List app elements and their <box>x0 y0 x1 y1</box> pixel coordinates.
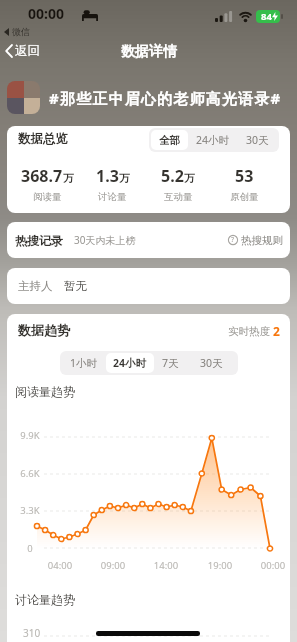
button[interactable]: 微信 <box>4 26 30 37</box>
staticText: 微信 <box>12 26 30 37</box>
button[interactable]: 主持人 <box>18 268 279 304</box>
staticText: 2 <box>273 323 280 339</box>
staticText: 暂无 <box>64 279 87 293</box>
staticText: 14:00 <box>151 559 181 572</box>
staticText: 24小时 <box>196 133 230 147</box>
staticText: 实时热度 <box>228 324 273 338</box>
staticText: 30天内未上榜 <box>74 233 136 247</box>
staticText: 5.2 <box>161 165 184 187</box>
button[interactable]: #那些正中眉心的老师高光语录# <box>7 81 282 114</box>
staticText: 19:00 <box>205 559 235 572</box>
button[interactable]: 热搜记录 <box>15 222 283 258</box>
button[interactable]: 返回 <box>5 43 40 59</box>
staticText: 30天 <box>200 356 223 370</box>
staticText: 阅读量 <box>33 191 62 203</box>
staticText: 310 <box>23 626 41 640</box>
button[interactable]: 全部 <box>159 130 180 150</box>
button[interactable]: 1小时 <box>70 356 98 370</box>
staticText: 热搜记录 <box>15 233 63 248</box>
staticText: 0 <box>16 542 44 555</box>
staticText: 84 <box>261 10 272 23</box>
staticText: 1.3 <box>96 165 119 187</box>
button[interactable]: 7天 <box>162 356 179 370</box>
staticText: ? <box>231 235 235 245</box>
staticText: 9.9K <box>16 429 44 442</box>
staticText: 原创量 <box>230 191 259 203</box>
staticText: 00:00 <box>258 559 288 572</box>
button[interactable]: 30天 <box>246 133 269 147</box>
staticText: 互动量 <box>164 191 193 203</box>
staticText: 6.6K <box>16 467 44 480</box>
staticText: 万 <box>184 172 195 185</box>
staticText: 数据详情 <box>121 43 177 61</box>
staticText: 热搜规则 <box>241 234 283 247</box>
staticText: 7天 <box>162 356 179 370</box>
staticText: 368.7 <box>21 165 63 187</box>
staticText: 24小时 <box>113 356 147 370</box>
staticText: #那些正中眉心的老师高光语录# <box>49 88 282 108</box>
staticText: 万 <box>63 172 74 185</box>
staticText: 53 <box>235 165 254 187</box>
staticText: 讨论量 <box>98 191 127 203</box>
staticText: 09:00 <box>98 559 128 572</box>
staticText: 数据总览 <box>18 131 68 147</box>
button[interactable]: 30天 <box>200 356 223 370</box>
button[interactable]: 24小时 <box>113 353 147 373</box>
staticText: 讨论量趋势 <box>15 592 75 607</box>
staticText: 主持人 <box>18 279 53 293</box>
staticText: 数据趋势 <box>18 322 70 338</box>
staticText: 全部 <box>159 134 180 147</box>
staticText: 万 <box>119 172 130 185</box>
staticText: 00:00 <box>28 4 64 23</box>
staticText: 30天 <box>246 133 269 147</box>
button[interactable]: 24小时 <box>196 133 230 147</box>
staticText: 3.3K <box>16 504 44 517</box>
staticText: 阅读量趋势 <box>15 384 75 399</box>
staticText: 1小时 <box>70 356 98 370</box>
staticText: 04:00 <box>45 559 75 572</box>
staticText: 返回 <box>15 43 40 59</box>
